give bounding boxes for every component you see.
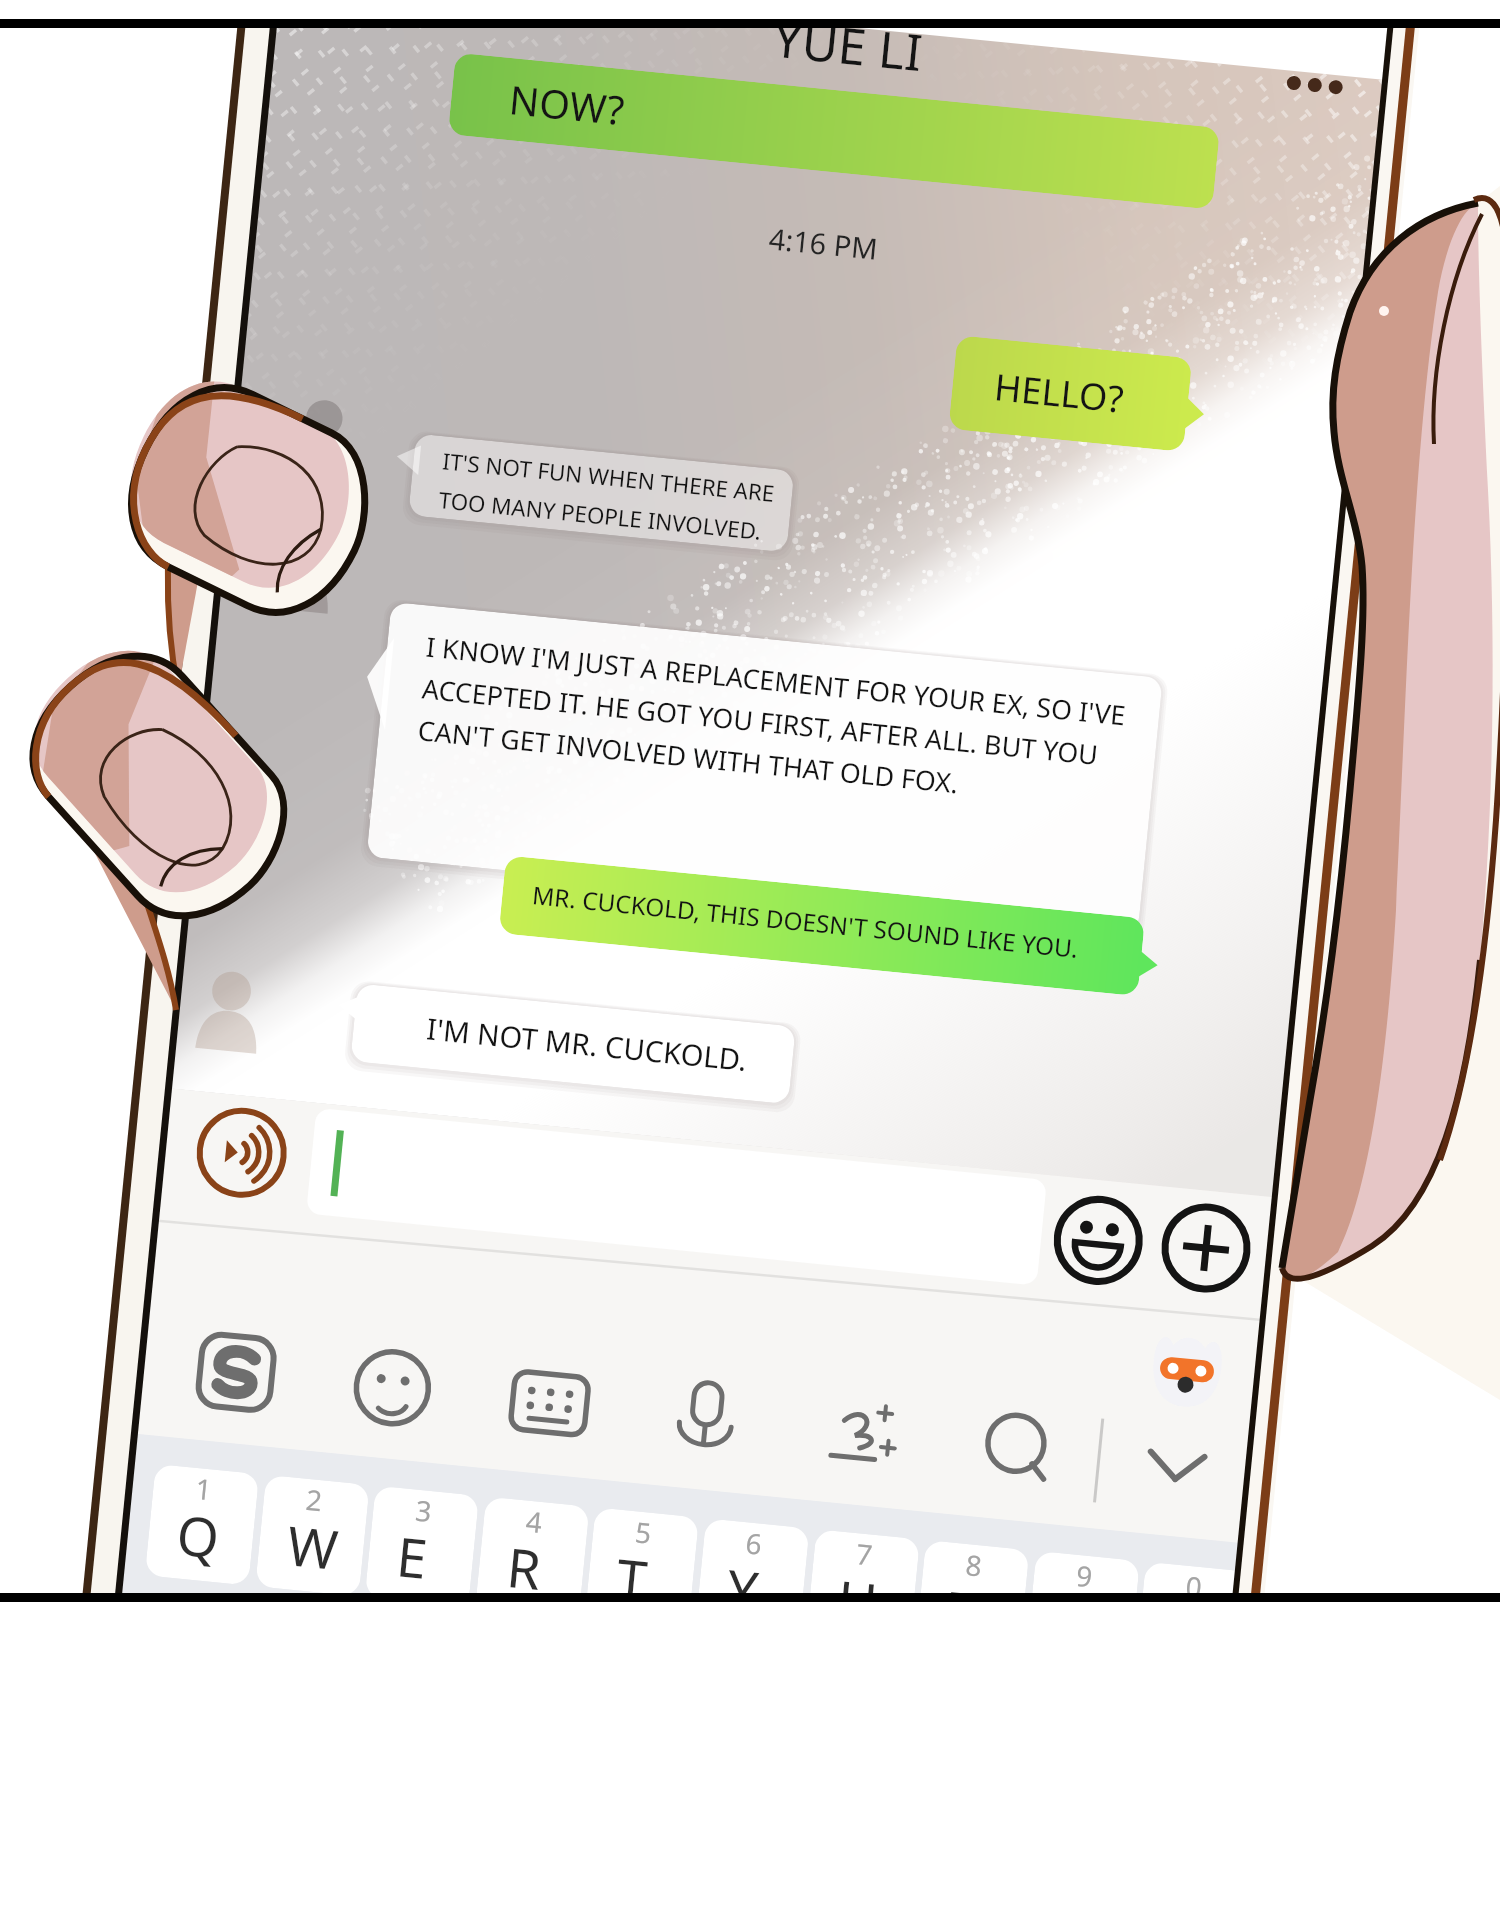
button[interactable]: 9 <box>1025 1551 1140 1672</box>
staticText: MR. CUCKOLD, THIS DOESN'T SOUND LIKE YOU… <box>531 878 1080 965</box>
staticText: Q <box>173 1496 223 1574</box>
button[interactable]: 6 <box>695 1518 810 1640</box>
button[interactable]: 4 <box>475 1496 590 1618</box>
staticText: Y <box>724 1551 762 1627</box>
button[interactable]: Sticker <box>1141 1325 1233 1417</box>
staticText: IT'S NOT FUN WHEN THERE ARE TOO MANY PEO… <box>437 445 777 547</box>
button[interactable]: More options <box>1280 70 1383 110</box>
button[interactable]: Input method <box>186 1322 286 1423</box>
staticText: I'M NOT MR. CUCKOLD. <box>425 1008 749 1080</box>
staticText: 6 <box>744 1523 765 1563</box>
button[interactable]: Emoji <box>1050 1192 1146 1288</box>
button[interactable]: IT'S NOT FUN WHEN THERE ARE TOO MANY PEO… <box>408 433 794 552</box>
staticText: R <box>504 1529 545 1606</box>
button[interactable]: Hide keyboard <box>1126 1415 1227 1515</box>
staticText: 2 <box>304 1480 325 1519</box>
button[interactable]: Emoji <box>342 1337 443 1438</box>
staticText: 5 <box>634 1512 654 1552</box>
button[interactable]: Keyboard layout <box>499 1353 600 1454</box>
button[interactable]: NOW? <box>448 52 1220 210</box>
button[interactable]: 0 <box>1135 1562 1249 1683</box>
staticText: 7 <box>854 1534 875 1574</box>
staticText: 3 <box>414 1491 434 1530</box>
button[interactable]: 8 <box>915 1540 1029 1662</box>
button[interactable]: Voice input <box>655 1368 756 1469</box>
staticText: U <box>834 1562 881 1639</box>
button[interactable]: 2 <box>255 1475 370 1596</box>
staticText: 9 <box>1074 1556 1095 1595</box>
staticText: 8 <box>964 1545 985 1584</box>
staticText: T <box>613 1540 651 1617</box>
staticText: O <box>1054 1583 1104 1661</box>
staticText: E <box>393 1518 431 1595</box>
button[interactable]: I'M NOT MR. CUCKOLD. <box>350 983 796 1104</box>
staticText: HELLO? <box>992 361 1126 424</box>
button[interactable]: I KNOW I'M JUST A REPLACEMENT FOR YOUR E… <box>366 602 1163 933</box>
staticText: NOW? <box>507 72 628 137</box>
button[interactable]: 7 <box>805 1529 920 1651</box>
button[interactable]: 5 <box>585 1507 699 1629</box>
staticText: 1 <box>194 1469 214 1508</box>
button[interactable]: Add attachment <box>1158 1200 1254 1296</box>
button[interactable]: MR. CUCKOLD, THIS DOESN'T SOUND LIKE YOU… <box>499 855 1145 996</box>
button[interactable]: YUE LI <box>770 4 925 86</box>
button[interactable]: Handwriting <box>813 1384 913 1484</box>
staticText: I KNOW I'M JUST A REPLACEMENT FOR YOUR E… <box>416 628 1128 817</box>
staticText: 4 <box>524 1502 545 1541</box>
button[interactable]: Voice message <box>191 1102 292 1203</box>
staticText: 0 <box>1184 1567 1205 1606</box>
button[interactable]: 3 <box>365 1486 479 1607</box>
staticText: 4:16 PM <box>767 218 880 268</box>
button[interactable]: 1 <box>145 1464 259 1586</box>
button[interactable]: HELLO? <box>948 335 1192 452</box>
staticText: W <box>284 1507 342 1586</box>
staticText: P <box>1164 1594 1204 1671</box>
button[interactable]: Search <box>969 1399 1070 1500</box>
staticText: I <box>944 1572 970 1648</box>
